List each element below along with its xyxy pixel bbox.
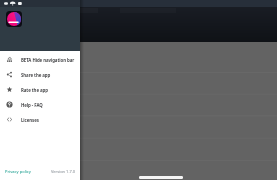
button[interactable]: App icon: [6, 11, 22, 27]
staticText: Licenses: [21, 117, 39, 123]
staticText: Version 1.7.0: [51, 169, 76, 174]
button[interactable]: Rate the app: [0, 82, 80, 97]
button[interactable]: Privacy policy: [5, 169, 31, 174]
button[interactable]: Help - FAQ: [0, 97, 80, 112]
staticText: Share the app: [21, 72, 51, 78]
button[interactable]: BETA Hide navigation bar: [0, 52, 80, 67]
staticText: Rate the app: [21, 87, 48, 93]
button[interactable]: Share the app: [0, 67, 80, 82]
staticText: Privacy policy: [5, 169, 31, 174]
staticText: BETA Hide navigation bar: [21, 57, 75, 63]
button[interactable]: Licenses: [0, 112, 80, 127]
staticText: Help - FAQ: [21, 102, 43, 108]
